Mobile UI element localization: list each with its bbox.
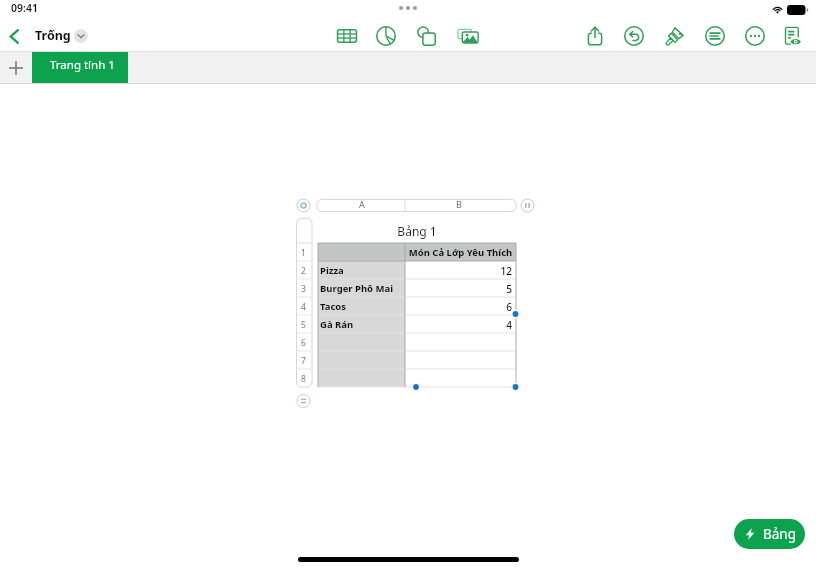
staticText: 5 xyxy=(296,319,311,331)
button[interactable]: Undo xyxy=(623,20,664,51)
button[interactable]: Back xyxy=(0,22,28,50)
button[interactable]: Trống xyxy=(28,24,90,47)
staticText: Trống xyxy=(35,27,71,44)
button[interactable]: Insert shape xyxy=(415,20,457,51)
staticText: 3 xyxy=(296,283,311,295)
button[interactable]: Insert chart xyxy=(375,20,415,51)
staticText: A xyxy=(319,198,405,210)
staticText: 8 xyxy=(296,373,311,385)
staticText: Tacos xyxy=(320,300,347,313)
button[interactable]: Select table xyxy=(297,199,310,212)
staticText: Món Cả Lớp Yêu Thích xyxy=(407,246,514,259)
staticText: 1 xyxy=(296,247,311,259)
staticText: Pizza xyxy=(320,264,344,277)
staticText: B xyxy=(406,198,512,210)
staticText: 6 xyxy=(296,337,311,349)
staticText: Bảng 1 xyxy=(318,223,516,239)
button[interactable]: Insert table xyxy=(336,20,375,51)
staticText: Bảng xyxy=(763,525,796,543)
staticText: Gà Rán xyxy=(320,318,354,331)
staticText: 5 xyxy=(405,282,512,296)
staticText: Burger Phô Mai xyxy=(320,282,394,295)
staticText: 4 xyxy=(296,301,311,313)
button[interactable]: Table options xyxy=(521,199,534,212)
button[interactable]: Document options xyxy=(782,20,812,51)
button[interactable]: Trang tính 1 xyxy=(32,52,128,83)
button[interactable]: Column B xyxy=(405,199,516,212)
button[interactable]: Paragraph style xyxy=(704,20,744,51)
button[interactable]: More xyxy=(744,20,782,51)
button[interactable]: Add sheet xyxy=(0,52,32,83)
staticText: 4 xyxy=(405,318,512,332)
staticText: 09:41 xyxy=(11,1,38,15)
button[interactable]: Bảng xyxy=(734,519,805,549)
button[interactable]: Insert media xyxy=(457,20,487,51)
staticText: 6 xyxy=(405,300,512,314)
button[interactable]: Column A xyxy=(317,199,405,212)
button[interactable]: Format xyxy=(664,20,704,51)
button[interactable]: Share xyxy=(584,20,623,51)
staticText: 2 xyxy=(296,265,311,277)
staticText: Trang tính 1 xyxy=(50,57,115,73)
staticText: 7 xyxy=(296,355,311,367)
staticText: 12 xyxy=(405,264,512,278)
button[interactable]: Row options xyxy=(297,394,310,407)
